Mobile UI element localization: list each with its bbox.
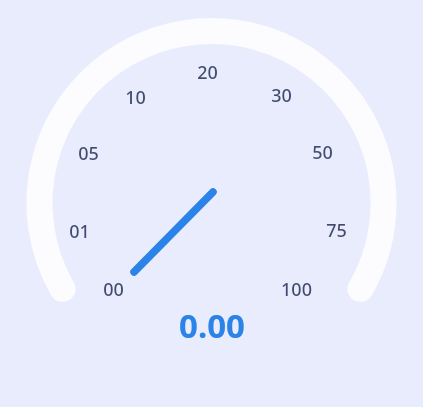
button[interactable]: 0.00 [151, 303, 272, 347]
staticText: 05 [78, 141, 99, 166]
staticText: 30 [271, 83, 292, 108]
button[interactable]: Speed gauge, current value 0.00 [0, 0, 423, 407]
staticText: 00 [103, 277, 124, 302]
staticText: 10 [125, 85, 146, 110]
staticText: 0.00 [179, 303, 245, 347]
staticText: 01 [69, 219, 90, 244]
staticText: 75 [326, 218, 347, 243]
staticText: 50 [312, 140, 333, 165]
staticText: 100 [281, 277, 312, 302]
staticText: 20 [197, 60, 218, 85]
